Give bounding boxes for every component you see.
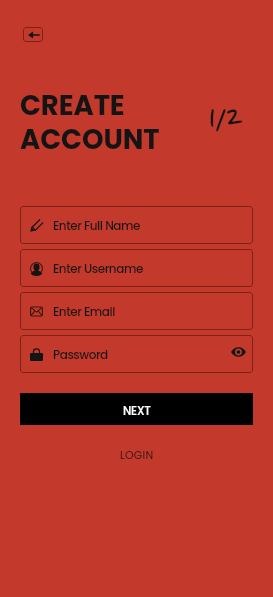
staticText: LOGIN xyxy=(120,447,154,462)
staticText: Enter Full Name xyxy=(53,217,141,234)
staticText: CREATE ACCOUNT xyxy=(20,86,160,159)
staticText: 1/2 xyxy=(208,100,241,140)
staticText: NEXT xyxy=(123,403,151,419)
button[interactable]: NEXT xyxy=(20,393,253,425)
staticText: Enter Email xyxy=(53,303,115,320)
staticText: Password xyxy=(53,346,108,363)
button[interactable]: Back xyxy=(23,27,43,42)
button[interactable]: Show password xyxy=(227,341,249,363)
staticText: Enter Username xyxy=(53,260,143,277)
button[interactable]: Password xyxy=(20,335,253,373)
button[interactable]: Enter Full Name xyxy=(20,206,253,244)
button[interactable]: LOGIN xyxy=(110,442,164,467)
button[interactable]: Enter Username xyxy=(20,249,253,287)
button[interactable]: Enter Email xyxy=(20,292,253,330)
